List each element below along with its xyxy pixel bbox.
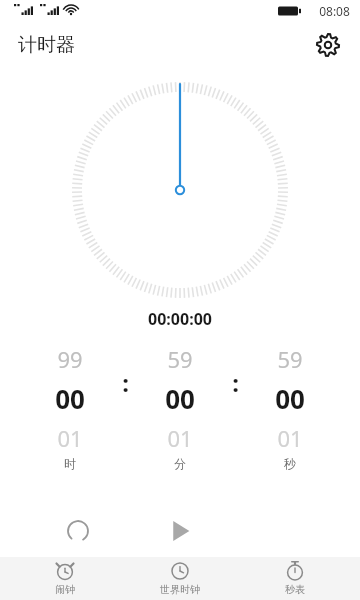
button[interactable]: Reset <box>56 509 100 553</box>
staticText: 59 <box>277 344 303 374</box>
staticText: 00 <box>55 381 85 416</box>
staticText: 00 <box>165 381 195 416</box>
button[interactable]: 世界时钟 <box>130 557 230 600</box>
button[interactable]: 59 <box>246 344 334 471</box>
staticText: 00 <box>275 381 305 416</box>
staticText: : <box>232 366 239 399</box>
staticText: 08:08 <box>319 3 350 19</box>
button[interactable]: 闹钟 <box>15 557 115 600</box>
staticText: : <box>122 366 129 399</box>
staticText: 秒 <box>284 456 296 471</box>
button[interactable]: Settings <box>308 25 348 65</box>
button[interactable]: 99 <box>26 344 114 471</box>
staticText: 世界时钟 <box>160 583 200 596</box>
button[interactable]: 59 <box>136 344 224 471</box>
staticText: 99 <box>57 344 83 374</box>
staticText: 59 <box>167 344 193 374</box>
staticText: 计时器 <box>18 33 75 57</box>
button[interactable]: 秒表 <box>245 557 345 600</box>
staticText: 01 <box>277 423 303 453</box>
staticText: 闹钟 <box>55 583 75 596</box>
staticText: 01 <box>57 423 83 453</box>
staticText: 分 <box>174 456 186 471</box>
staticText: 时 <box>64 456 76 471</box>
staticText: 01 <box>167 423 193 453</box>
button[interactable]: Start <box>152 503 208 559</box>
staticText: 秒表 <box>285 583 305 596</box>
staticText: 00:00:00 <box>148 308 212 330</box>
